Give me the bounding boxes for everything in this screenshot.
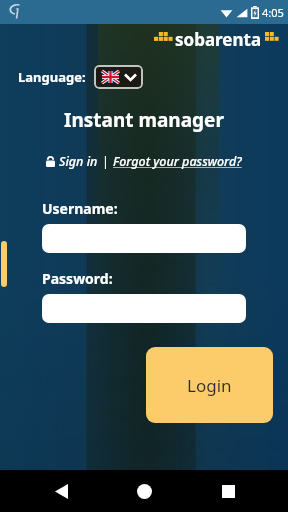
button[interactable]: Username field — [42, 224, 246, 253]
staticText: Password: — [42, 269, 113, 288]
staticText: Language: — [18, 68, 86, 86]
staticText: Username: — [42, 199, 118, 218]
button[interactable]: Sign in — [46, 153, 98, 170]
button[interactable]: Select language — [94, 65, 143, 89]
staticText: sobarenta — [175, 28, 262, 51]
button[interactable]: Open side panel — [1, 241, 7, 287]
staticText: Instant manager — [64, 107, 224, 133]
staticText: Login — [187, 374, 232, 397]
button[interactable]: Home — [121, 470, 167, 512]
button[interactable]: Login — [146, 347, 273, 423]
staticText: Forgot your password? — [113, 153, 242, 170]
button[interactable]: sobarenta — [154, 28, 284, 51]
button[interactable]: Password field — [42, 294, 246, 323]
staticText: | — [102, 153, 109, 170]
button[interactable]: Back — [38, 470, 84, 512]
button[interactable]: Forgot your password? — [113, 153, 242, 170]
staticText: Sign in — [59, 153, 98, 170]
staticText: 4:05 — [262, 5, 284, 20]
button[interactable]: Recent apps — [205, 470, 251, 512]
